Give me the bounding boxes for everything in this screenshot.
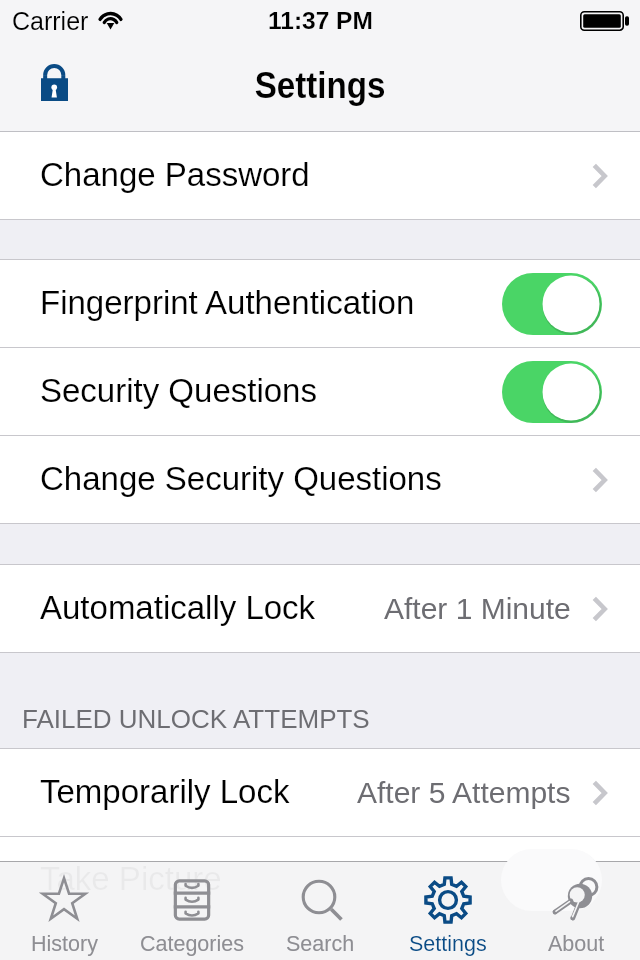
staticText: After 5 Attempts — [357, 776, 571, 810]
button[interactable]: Fingerprint Authentication — [0, 260, 640, 347]
button[interactable]: Categories — [128, 862, 256, 960]
button[interactable]: Search — [256, 862, 384, 960]
staticText: About — [548, 932, 605, 956]
button[interactable]: Take Picture — [0, 837, 640, 924]
button[interactable]: Automatically Lock — [0, 565, 640, 652]
staticText: Settings — [255, 65, 386, 105]
button[interactable]: Temporarily Lock — [0, 749, 640, 836]
button[interactable]: Security Questions — [0, 348, 640, 435]
staticText: Take Picture — [40, 860, 222, 897]
staticText: Change Password — [40, 156, 310, 193]
staticText: After 1 Minute — [384, 592, 571, 626]
staticText: Categories — [140, 932, 244, 956]
staticText: Temporarily Lock — [40, 773, 290, 810]
button[interactable]: Enabled — [502, 273, 602, 335]
staticText: Take Picture — [40, 861, 222, 898]
button[interactable]: Lock — [25, 56, 84, 100]
staticText: 11:37 PM — [268, 7, 373, 34]
staticText: Security Questions — [40, 372, 317, 409]
button[interactable]: Disabled — [502, 850, 602, 912]
staticText: Fingerprint Authentication — [40, 284, 415, 321]
button[interactable]: History — [0, 862, 128, 960]
button[interactable]: Change Password — [0, 132, 640, 219]
staticText: Settings — [409, 932, 487, 956]
button[interactable]: About — [512, 862, 640, 960]
staticText: Carrier — [12, 7, 89, 35]
staticText: Search — [286, 932, 355, 956]
button[interactable]: Change Security Questions — [0, 436, 640, 523]
staticText: FAILED UNLOCK ATTEMPTS — [22, 704, 370, 733]
staticText: History — [31, 932, 98, 956]
button[interactable]: Enabled — [502, 361, 602, 423]
staticText: Automatically Lock — [40, 589, 316, 626]
button[interactable]: Settings — [384, 862, 512, 960]
staticText: Change Security Questions — [40, 460, 442, 497]
